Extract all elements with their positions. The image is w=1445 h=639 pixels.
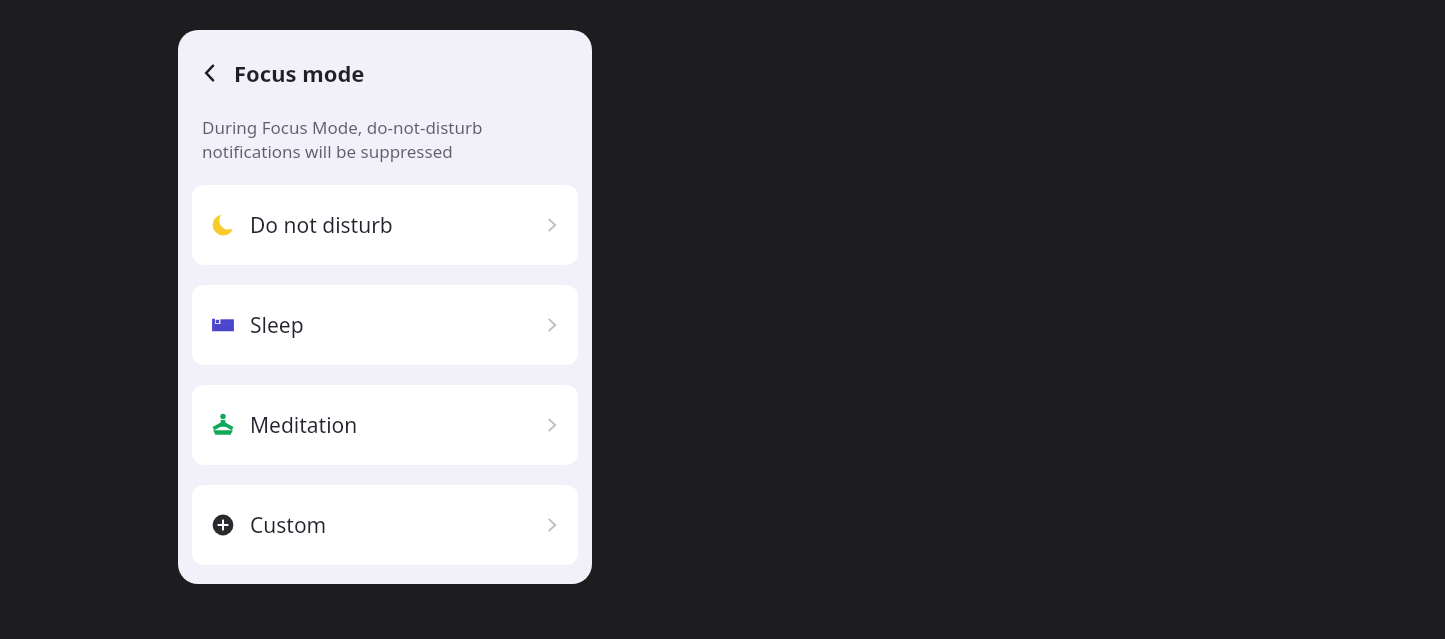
staticText: Sleep xyxy=(250,311,304,340)
staticText: Meditation xyxy=(250,411,358,440)
button[interactable]: Meditation xyxy=(192,385,578,465)
staticText: Do not disturb xyxy=(250,211,393,240)
button[interactable]: Back xyxy=(192,55,228,91)
button[interactable]: Sleep xyxy=(192,285,578,365)
staticText: During Focus Mode, do-not-disturb notifi… xyxy=(202,116,483,163)
button[interactable]: Custom xyxy=(192,485,578,565)
staticText: Custom xyxy=(250,511,327,540)
button[interactable]: Do not disturb xyxy=(192,185,578,265)
staticText: Focus mode xyxy=(234,58,365,88)
